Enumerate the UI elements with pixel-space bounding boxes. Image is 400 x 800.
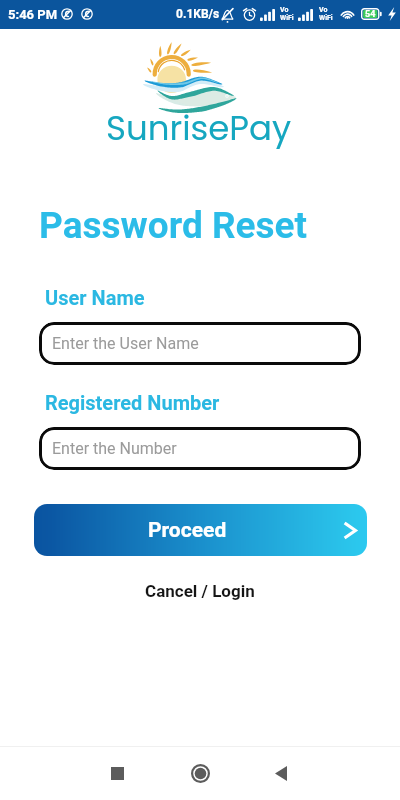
staticText: Vo: [280, 6, 289, 14]
staticText: 0.1KB/s: [176, 7, 220, 21]
staticText: Enter the User Name: [52, 334, 199, 353]
button[interactable]: Cancel / Login: [135, 577, 265, 605]
button[interactable]: Recent apps: [93, 749, 141, 797]
staticText: 5:46 PM: [8, 7, 58, 22]
staticText: Registered Number: [45, 391, 220, 414]
staticText: User Name: [45, 286, 145, 309]
button[interactable]: Enter the Number: [39, 427, 361, 470]
staticText: Proceed: [148, 518, 227, 543]
staticText: 54: [365, 9, 376, 20]
button[interactable]: Enter the User Name: [39, 322, 361, 365]
button[interactable]: Home: [176, 749, 224, 797]
staticText: WiFi: [319, 14, 333, 22]
staticText: SunrisePay: [106, 104, 292, 152]
staticText: Password Reset: [39, 204, 308, 247]
staticText: WiFi: [280, 14, 294, 22]
button[interactable]: Back: [257, 749, 305, 797]
staticText: Vo: [319, 6, 328, 14]
button[interactable]: Proceed: [34, 504, 367, 556]
staticText: Enter the Number: [52, 439, 177, 458]
